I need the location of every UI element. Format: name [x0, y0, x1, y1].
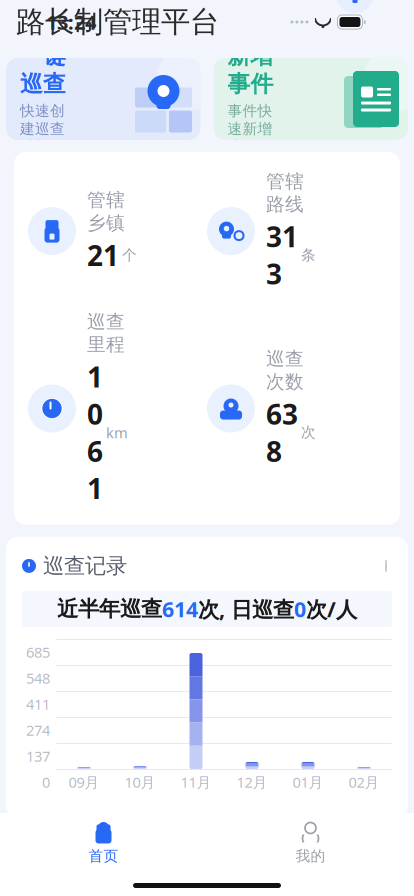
staticText: 12月	[236, 772, 267, 792]
staticText: 01月	[292, 772, 323, 792]
staticText: 02月	[348, 772, 379, 792]
staticText: 新增事件	[227, 42, 273, 98]
staticText: 近半年巡查	[57, 596, 162, 622]
staticText: km	[106, 423, 128, 442]
staticText: 0	[42, 772, 50, 792]
staticText: 上报事件	[44, 845, 128, 871]
button[interactable]: 新增事件	[213, 58, 408, 140]
button[interactable]: 巡查记录	[6, 537, 408, 591]
staticText: 我的	[295, 847, 325, 865]
staticText: 274	[26, 720, 50, 740]
staticText: 614	[162, 595, 198, 623]
staticText: 137	[26, 746, 50, 766]
staticText: 13:24	[46, 9, 96, 35]
staticText: 快速创建巡查计划	[20, 102, 65, 156]
staticText: , 已完结	[243, 887, 318, 896]
staticText: 管辖路线	[266, 170, 304, 216]
button[interactable]: 我的	[207, 819, 414, 867]
staticText: 09月	[68, 772, 99, 792]
staticText: 次	[301, 423, 316, 441]
button[interactable]: 上报事件	[6, 829, 408, 883]
staticText: 10月	[124, 772, 155, 792]
staticText: 次, 日巡查	[198, 595, 294, 623]
staticText: 638	[266, 395, 298, 470]
staticText: 1061	[87, 358, 103, 507]
button[interactable]: 一键巡查	[6, 58, 200, 140]
staticText: 巡查次数	[266, 347, 304, 393]
staticText: 路长制管理平台	[16, 4, 219, 40]
staticText: 0	[294, 595, 306, 623]
staticText: 个	[122, 246, 137, 264]
staticText: 事件快速新增处理	[227, 102, 272, 156]
staticText: 685	[26, 642, 50, 662]
staticText: 条	[301, 246, 316, 264]
button[interactable]: 首页	[0, 819, 207, 867]
staticText: 548	[26, 668, 50, 688]
staticText: 首页	[88, 847, 118, 865]
staticText: 一键巡查	[20, 42, 66, 98]
staticText: 11月	[180, 772, 211, 792]
staticText: 次/人	[306, 595, 357, 623]
staticText: 管辖乡镇	[87, 189, 125, 234]
staticText: 巡查里程	[87, 310, 125, 356]
staticText: 411	[26, 694, 50, 714]
staticText: 18	[219, 887, 243, 896]
staticText: 21	[87, 236, 119, 274]
staticText: 313	[266, 218, 298, 292]
staticText: 巡查记录	[43, 553, 127, 579]
